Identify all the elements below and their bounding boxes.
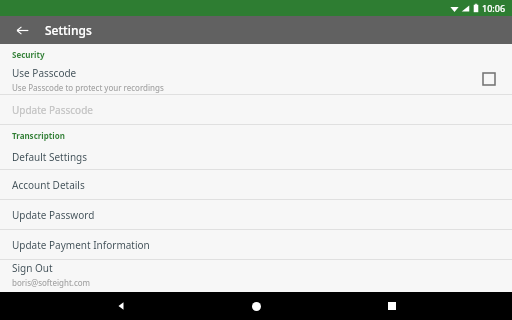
button[interactable]: Back <box>12 20 32 40</box>
button[interactable]: Back <box>106 292 136 320</box>
button[interactable]: Account Details <box>0 170 512 199</box>
button[interactable]: Default Settings <box>0 145 512 169</box>
staticText: Account Details <box>12 178 85 192</box>
staticText: boris@softeight.com <box>12 277 91 288</box>
staticText: Use Passcode <box>12 66 77 80</box>
staticText: Settings <box>45 22 92 38</box>
staticText: Update Payment Information <box>12 238 150 252</box>
staticText: Update Password <box>12 208 95 222</box>
staticText: Transcription <box>12 130 65 141</box>
button[interactable]: Update Password <box>0 200 512 229</box>
staticText: Sign Out <box>12 261 53 275</box>
staticText: Use Passcode to protect your recordings <box>12 82 164 93</box>
staticText: Default Settings <box>12 150 88 164</box>
staticText: Update Passcode <box>12 103 93 117</box>
button[interactable]: Update Payment Information <box>0 230 512 259</box>
button[interactable]: Recent apps <box>377 292 407 320</box>
button[interactable]: Update Passcode <box>0 95 512 124</box>
button[interactable]: Use Passcode toggle <box>482 72 496 86</box>
staticText: 10:06 <box>482 2 506 14</box>
staticText: Security <box>12 49 45 60</box>
button[interactable]: Use Passcode <box>0 64 512 94</box>
button[interactable]: Sign Out <box>0 260 512 289</box>
button[interactable]: Home <box>241 292 271 320</box>
